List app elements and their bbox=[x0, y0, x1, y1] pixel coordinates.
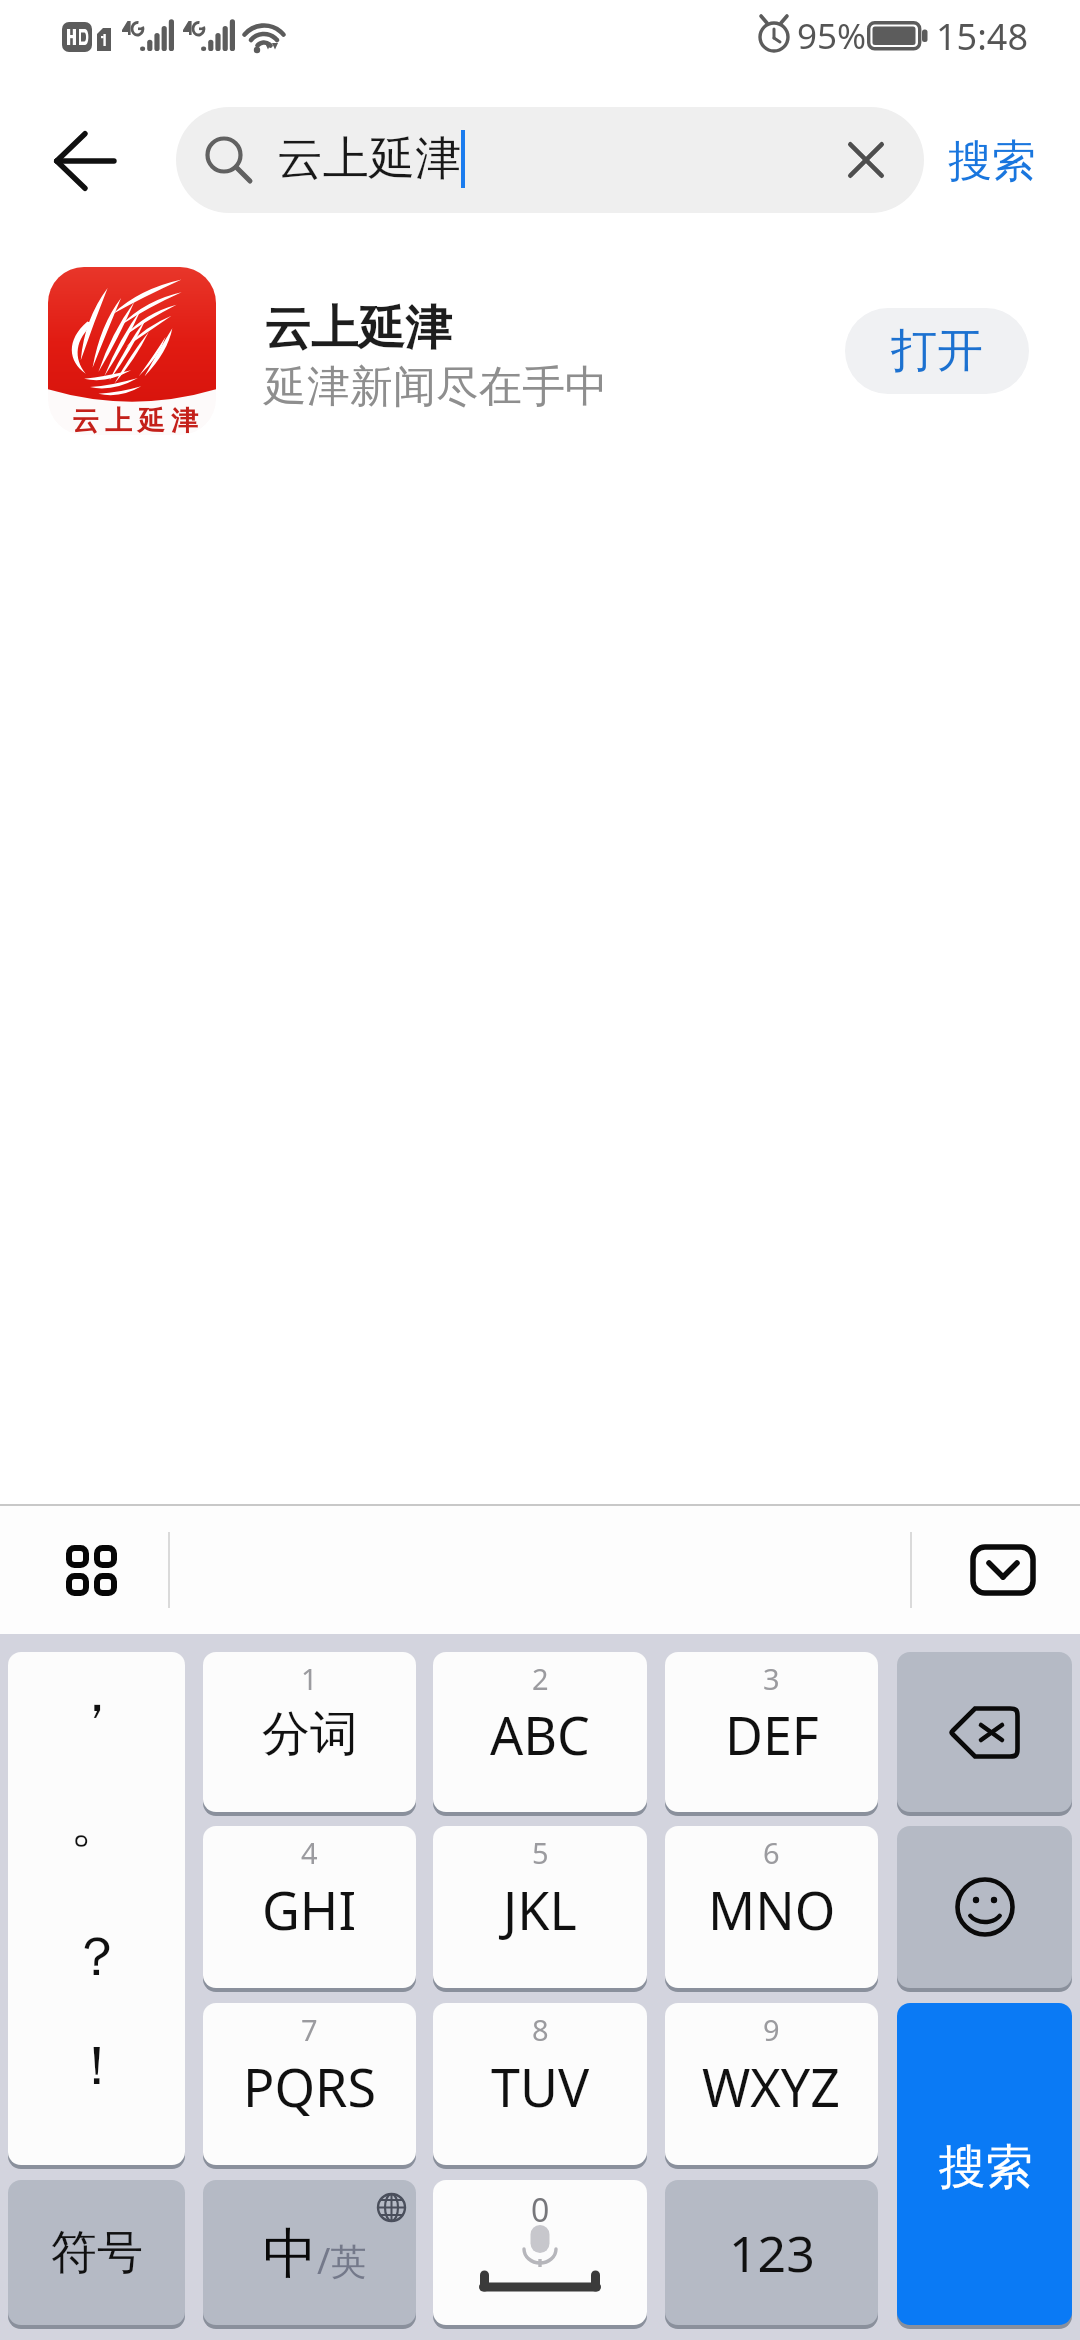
button[interactable]: 云上延津 bbox=[176, 107, 924, 213]
staticText: /英 bbox=[317, 2236, 367, 2285]
button[interactable]: 搜索 bbox=[928, 96, 1060, 226]
button[interactable]: Hide keyboard bbox=[955, 1522, 1051, 1618]
staticText: MNO bbox=[708, 1874, 836, 1945]
staticText: 4 bbox=[301, 1833, 318, 1872]
staticText: ？ bbox=[70, 1923, 124, 1991]
staticText: DEF bbox=[725, 1699, 819, 1770]
button[interactable]: Emoji bbox=[897, 1826, 1072, 1988]
staticText: GHI bbox=[262, 1874, 357, 1945]
button[interactable]: ， bbox=[8, 1652, 185, 2165]
button[interactable]: 云上延津 bbox=[0, 236, 1080, 476]
button[interactable]: 4 bbox=[203, 1826, 416, 1988]
button[interactable]: Backspace bbox=[897, 1652, 1072, 1812]
staticText: 5 bbox=[532, 1833, 549, 1872]
staticText: 云上延津 bbox=[277, 130, 461, 188]
button[interactable]: Clear bbox=[828, 122, 904, 198]
button[interactable]: 6 bbox=[665, 1826, 878, 1988]
button[interactable]: 8 bbox=[433, 2003, 647, 2165]
staticText: TUV bbox=[491, 2051, 590, 2122]
staticText: 8 bbox=[532, 2010, 549, 2049]
staticText: 0 bbox=[531, 2188, 550, 2232]
staticText: 云上延津 bbox=[69, 404, 201, 435]
button[interactable]: 3 bbox=[665, 1652, 878, 1812]
button[interactable]: 5 bbox=[433, 1826, 647, 1988]
button[interactable]: Space / voice input bbox=[433, 2180, 647, 2325]
staticText: 搜索 bbox=[948, 134, 1036, 189]
button[interactable]: Keyboard layouts bbox=[43, 1522, 139, 1618]
staticText: 6 bbox=[763, 1833, 780, 1872]
staticText: 搜索 bbox=[939, 2138, 1033, 2197]
staticText: 7 bbox=[301, 2010, 318, 2049]
staticText: 2 bbox=[532, 1659, 549, 1698]
button[interactable]: 123 bbox=[665, 2180, 878, 2325]
staticText: PQRS bbox=[243, 2051, 376, 2122]
button[interactable]: 打开 bbox=[845, 308, 1029, 394]
staticText: 延津新闻尽在手中 bbox=[264, 360, 608, 414]
staticText: ABC bbox=[490, 1699, 590, 1770]
staticText: 15:48 bbox=[936, 12, 1029, 61]
staticText: 中 bbox=[263, 2220, 317, 2288]
staticText: 9 bbox=[763, 2010, 780, 2049]
staticText: 符号 bbox=[51, 2224, 143, 2282]
staticText: WXYZ bbox=[702, 2051, 841, 2122]
staticText: JKL bbox=[503, 1874, 577, 1945]
staticText: 云上延津 bbox=[264, 299, 452, 358]
staticText: 123 bbox=[729, 2219, 815, 2287]
button[interactable]: Search bbox=[897, 2003, 1072, 2325]
button[interactable]: 符号 bbox=[8, 2180, 185, 2325]
staticText: 打开 bbox=[891, 322, 983, 380]
staticText: 分词 bbox=[262, 1704, 358, 1764]
staticText: 。 bbox=[70, 1789, 124, 1857]
staticText: 1 bbox=[301, 1659, 318, 1698]
button[interactable]: 9 bbox=[665, 2003, 878, 2165]
button[interactable]: Back bbox=[30, 106, 140, 216]
button[interactable]: 2 bbox=[433, 1652, 647, 1812]
button[interactable]: Switch Chinese English bbox=[203, 2180, 416, 2325]
staticText: 3 bbox=[763, 1659, 780, 1698]
staticText: ， bbox=[70, 1659, 124, 1727]
button[interactable]: 1 bbox=[203, 1652, 416, 1812]
staticText: 95% bbox=[797, 12, 867, 60]
button[interactable]: 7 bbox=[203, 2003, 416, 2165]
staticText: ！ bbox=[70, 2032, 124, 2100]
